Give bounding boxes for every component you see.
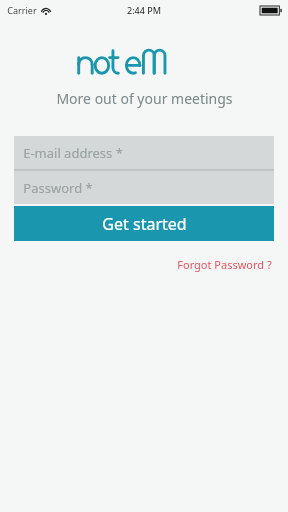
staticText: Carrier xyxy=(7,4,37,16)
button[interactable]: E-mail address * xyxy=(14,136,274,169)
button[interactable]: Password * xyxy=(14,171,274,204)
staticText: More out of your meetings xyxy=(56,89,233,108)
button[interactable]: Forgot Password ? xyxy=(175,255,274,274)
staticText: E-mail address * xyxy=(23,144,123,162)
staticText: Password * xyxy=(23,179,93,197)
staticText: Get started xyxy=(102,213,187,235)
button[interactable]: Get started xyxy=(14,206,274,241)
staticText: Forgot Password ? xyxy=(177,257,272,272)
staticText: 2:44 PM xyxy=(127,4,161,16)
